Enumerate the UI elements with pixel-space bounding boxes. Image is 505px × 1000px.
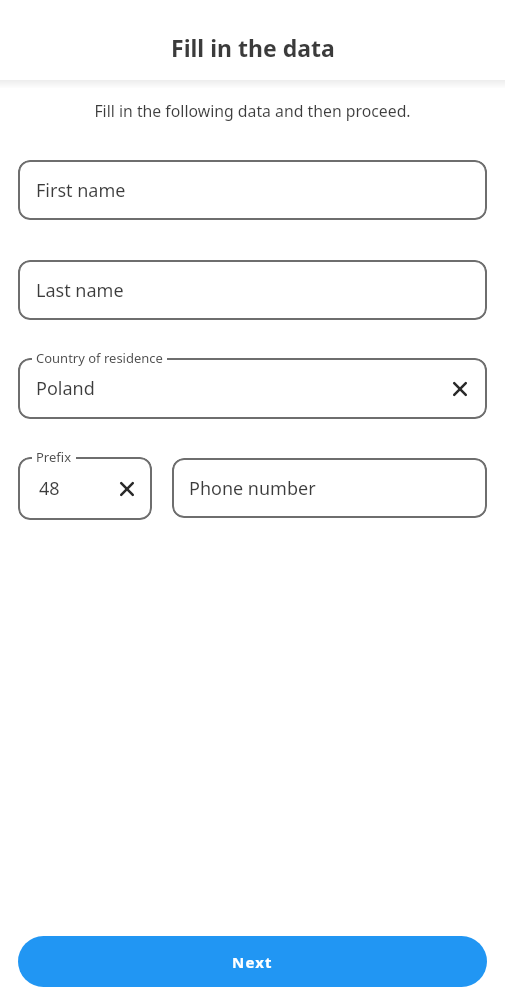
staticText: Fill in the following data and then proc… (0, 100, 505, 122)
staticText: Last name (36, 278, 124, 303)
staticText: Poland (36, 376, 95, 401)
button[interactable]: Phone number (172, 458, 487, 518)
staticText: Country of residence (36, 349, 163, 367)
staticText: Phone number (189, 476, 316, 501)
staticText: Prefix (36, 448, 72, 466)
button[interactable]: Poland (18, 358, 487, 419)
staticText: Next (232, 952, 273, 972)
button[interactable]: Next (18, 936, 487, 987)
staticText: First name (36, 178, 126, 203)
button[interactable]: 48 (18, 457, 152, 520)
staticText: 48 (39, 476, 60, 501)
button[interactable]: First name (18, 160, 487, 220)
staticText: Fill in the data (171, 32, 335, 63)
button[interactable]: Last name (18, 260, 487, 320)
